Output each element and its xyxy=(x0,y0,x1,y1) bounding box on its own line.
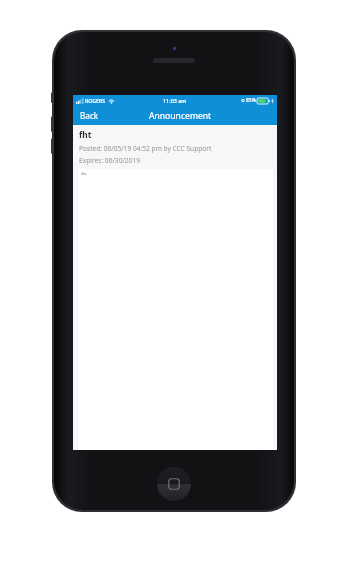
staticText: ROGERS xyxy=(85,97,106,104)
staticText: Announcement xyxy=(149,110,212,122)
staticText: 11:03 am xyxy=(163,97,187,104)
staticText: Expires: 06/30/2019 xyxy=(79,156,140,165)
staticText: dhs xyxy=(81,172,87,176)
button[interactable]: Home xyxy=(157,467,191,501)
staticText: fht xyxy=(79,129,92,140)
staticText: Back xyxy=(80,110,99,121)
staticText: Posted: 06/05/19 04:52 pm by CCC Support xyxy=(79,144,212,153)
button[interactable]: Back xyxy=(73,107,106,124)
staticText: 85% xyxy=(246,97,256,104)
